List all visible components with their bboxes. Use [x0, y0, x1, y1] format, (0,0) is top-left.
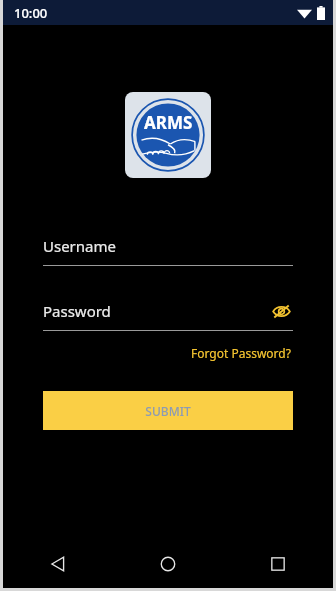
staticText: SUBMIT	[145, 403, 191, 419]
staticText: 10:00	[14, 4, 48, 22]
staticText: Password	[43, 301, 269, 321]
button[interactable]: Password	[43, 299, 293, 323]
button[interactable]: Username	[43, 234, 293, 258]
staticText: Forgot Password?	[191, 345, 291, 361]
button[interactable]: SUBMIT	[43, 391, 293, 430]
staticText: Username	[43, 236, 116, 256]
button[interactable]: Back	[3, 540, 113, 588]
button[interactable]: Show password	[269, 299, 293, 323]
staticText: ARMS	[144, 111, 193, 134]
button[interactable]: Home	[113, 540, 223, 588]
button[interactable]: Forgot Password?	[189, 342, 293, 364]
button[interactable]: Recent apps	[223, 540, 333, 588]
